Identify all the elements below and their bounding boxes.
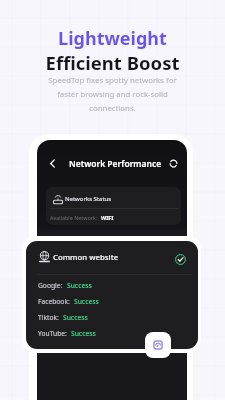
staticText: Network Performance — [69, 158, 162, 170]
staticText: WIFI — [101, 214, 114, 221]
staticText: Success — [71, 329, 96, 338]
staticText: YouTube: — [38, 329, 67, 338]
staticText: Google: — [38, 281, 63, 290]
staticText: Lightweight — [0, 26, 225, 51]
staticText: Efficient Boost — [0, 50, 225, 75]
button[interactable]: Refresh — [162, 152, 184, 174]
staticText: Success — [63, 313, 88, 322]
staticText: Success — [74, 297, 99, 306]
staticText: SpeedTop fixes spotty networks for faste… — [0, 75, 225, 113]
staticText: Facebook: — [38, 297, 70, 306]
button[interactable]: SpeedTop app — [145, 332, 171, 358]
button[interactable]: Networks Status — [46, 187, 181, 225]
staticText: Common website — [53, 252, 119, 263]
staticText: Available Network: — [50, 214, 98, 221]
button[interactable]: Back — [41, 152, 63, 174]
staticText: Success — [67, 281, 92, 290]
staticText: Tiktok: — [38, 313, 59, 322]
staticText: Networks Status — [65, 195, 112, 203]
other: All checks passed — [175, 254, 186, 265]
